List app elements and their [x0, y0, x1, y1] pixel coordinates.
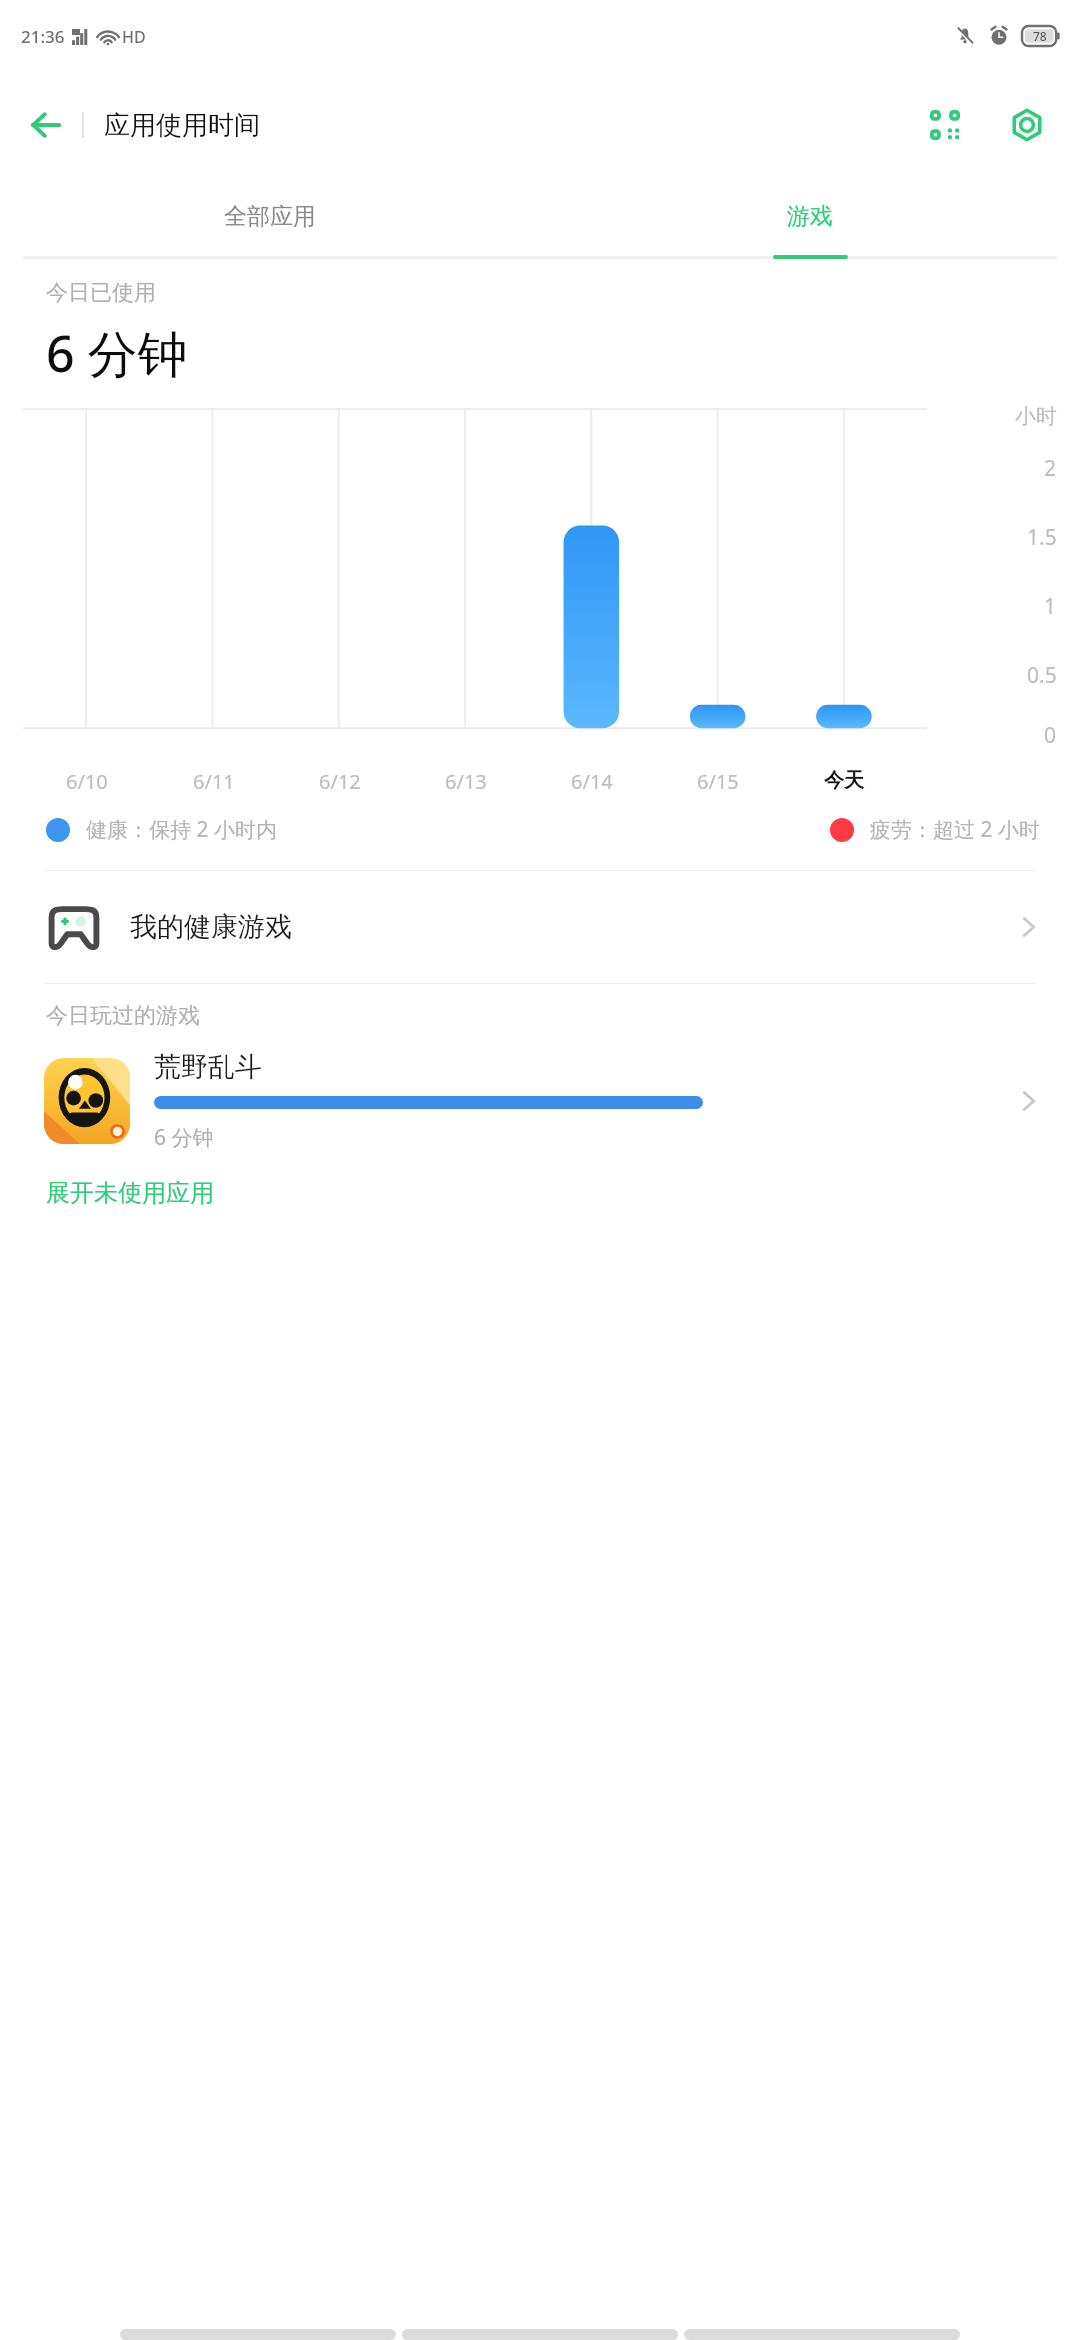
staticText: 1.5: [1027, 523, 1057, 552]
staticText: 6/14: [571, 768, 613, 795]
button[interactable]: 荒野乱斗: [0, 1044, 1080, 1158]
staticText: 6 分钟: [46, 319, 188, 387]
staticText: 21:36: [21, 25, 65, 48]
staticText: 游戏: [787, 202, 833, 231]
staticText: 今日玩过的游戏: [46, 1002, 200, 1030]
staticText: 我的健康游戏: [130, 910, 292, 944]
staticText: 全部应用: [224, 202, 316, 231]
staticText: 6/11: [193, 768, 235, 795]
staticText: 应用使用时间: [104, 109, 260, 142]
staticText: 78: [1033, 28, 1047, 44]
staticText: 6/10: [66, 768, 108, 795]
staticText: 6/12: [319, 768, 361, 795]
button[interactable]: 全部应用: [0, 177, 540, 255]
staticText: 6/13: [445, 768, 487, 795]
staticText: 疲劳：超过 2 小时: [870, 815, 1040, 844]
button[interactable]: 展开未使用应用: [0, 1172, 234, 1214]
staticText: HD: [122, 26, 146, 48]
button[interactable]: Settings: [996, 94, 1058, 156]
staticText: 展开未使用应用: [46, 1178, 214, 1208]
staticText: 6 分钟: [154, 1123, 214, 1152]
button[interactable]: 我的健康游戏: [0, 871, 1080, 983]
staticText: 荒野乱斗: [154, 1050, 262, 1084]
staticText: 小时: [1015, 403, 1057, 429]
staticText: 0.5: [1027, 661, 1057, 690]
staticText: 2: [1044, 454, 1057, 483]
staticText: 健康：保持 2 小时内: [86, 815, 277, 844]
staticText: 6/15: [697, 768, 739, 795]
button[interactable]: Scan QR code: [914, 94, 976, 156]
staticText: 1: [1044, 592, 1057, 621]
button[interactable]: 游戏: [540, 177, 1080, 255]
button[interactable]: Back: [16, 95, 76, 155]
staticText: 0: [1044, 721, 1057, 750]
staticText: 今日已使用: [46, 279, 156, 307]
staticText: 今天: [824, 768, 864, 793]
